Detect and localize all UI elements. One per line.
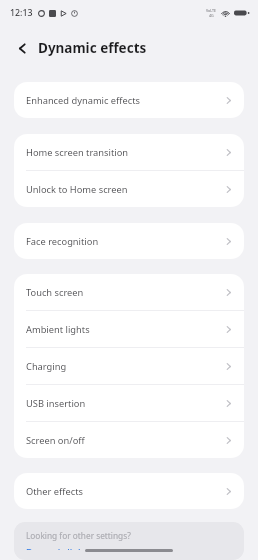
- button[interactable]: Home screen transition: [14, 134, 244, 170]
- button[interactable]: Dynamic light: [26, 546, 88, 550]
- staticText: Looking for other settings?: [26, 530, 131, 541]
- button[interactable]: Other effects: [14, 473, 244, 509]
- staticText: Ambient lights: [26, 323, 90, 336]
- button[interactable]: Unlock to Home screen: [14, 171, 244, 207]
- staticText: Other effects: [26, 485, 84, 498]
- staticText: USB insertion: [26, 397, 86, 410]
- button[interactable]: Back: [12, 38, 32, 58]
- button[interactable]: Ambient lights: [14, 311, 244, 347]
- staticText: Face recognition: [26, 235, 99, 248]
- button[interactable]: Touch screen: [14, 274, 244, 310]
- staticText: VoLTE: [206, 8, 217, 13]
- staticText: Charging: [26, 360, 67, 373]
- button[interactable]: Screen on/off: [14, 422, 244, 458]
- staticText: Unlock to Home screen: [26, 183, 128, 196]
- staticText: Screen on/off: [26, 434, 85, 447]
- staticText: Dynamic effects: [38, 39, 147, 57]
- button[interactable]: USB insertion: [14, 385, 244, 421]
- staticText: Touch screen: [26, 286, 84, 299]
- button[interactable]: Charging: [14, 348, 244, 384]
- staticText: Dynamic light: [26, 546, 88, 550]
- button[interactable]: Face recognition: [14, 223, 244, 259]
- staticText: 12:13: [10, 7, 33, 19]
- staticText: Home screen transition: [26, 146, 129, 159]
- staticText: 4G: [209, 13, 214, 18]
- staticText: Enhanced dynamic effects: [26, 94, 141, 107]
- button[interactable]: Enhanced dynamic effects: [14, 82, 244, 118]
